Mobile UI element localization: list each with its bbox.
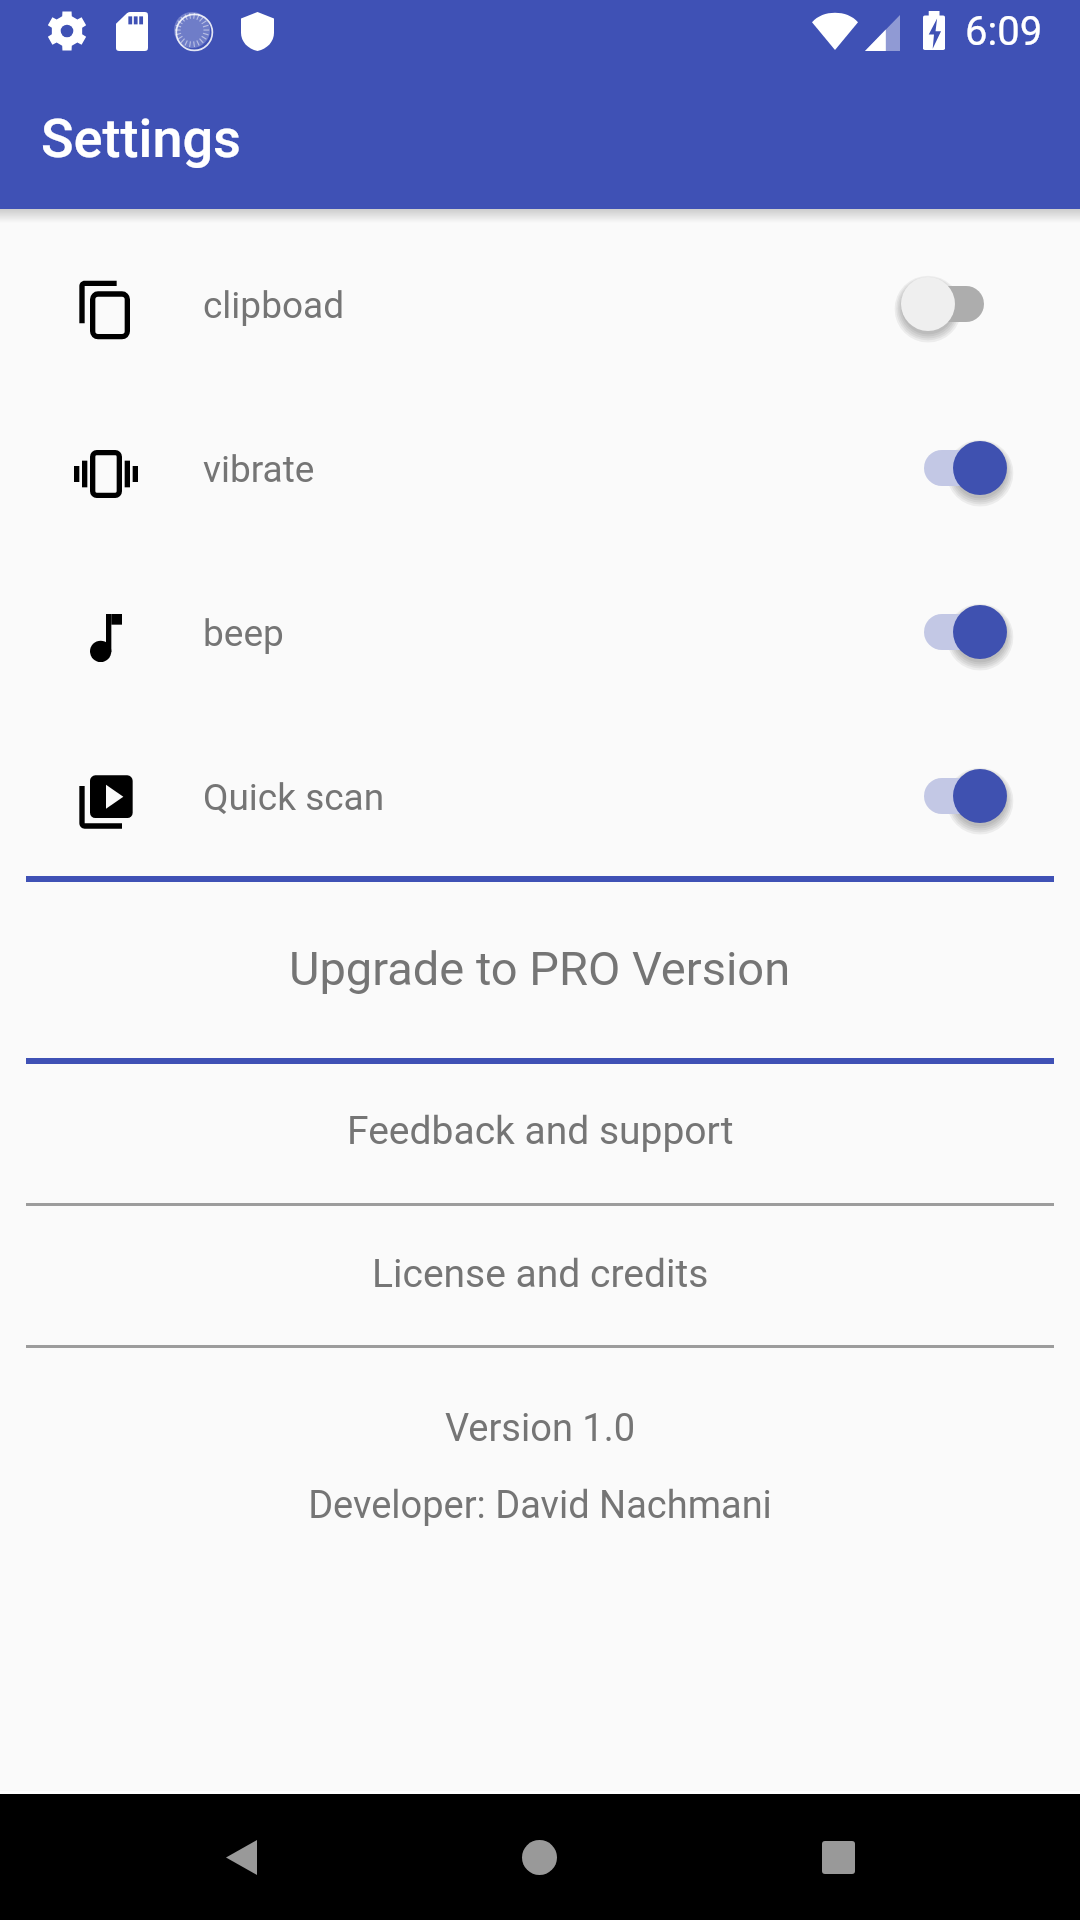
staticText: License and credits (372, 1251, 709, 1297)
staticText: Quick scan (203, 776, 385, 819)
staticText: vibrate (203, 448, 315, 491)
staticText: Upgrade to PRO Version (289, 941, 791, 996)
staticText: Developer: David Nachmani (0, 1483, 1080, 1528)
staticText: Feedback and support (347, 1108, 734, 1154)
staticText: clipboad (203, 284, 345, 327)
button[interactable]: Switch on (916, 390, 1080, 554)
button[interactable]: Switch on (916, 718, 1080, 882)
staticText: Settings (41, 107, 241, 170)
staticText: beep (203, 612, 284, 655)
staticText: 6:09 (965, 8, 1043, 55)
button[interactable]: Back (178, 1794, 304, 1920)
button[interactable]: Feedback and support (0, 1064, 1080, 1204)
button[interactable]: Switch on (916, 554, 1080, 718)
button[interactable]: clipboad (0, 226, 1080, 390)
button[interactable]: vibrate (0, 390, 1080, 554)
button[interactable]: Upgrade to PRO Version (0, 882, 1080, 1058)
staticText: Version 1.0 (0, 1406, 1080, 1451)
button[interactable]: Quick scan (0, 718, 1080, 882)
button[interactable]: License and credits (0, 1206, 1080, 1345)
button[interactable]: Switch off (916, 226, 1080, 390)
button[interactable]: beep (0, 554, 1080, 718)
button[interactable]: Home (476, 1794, 602, 1920)
button[interactable]: Recent apps (775, 1794, 901, 1920)
